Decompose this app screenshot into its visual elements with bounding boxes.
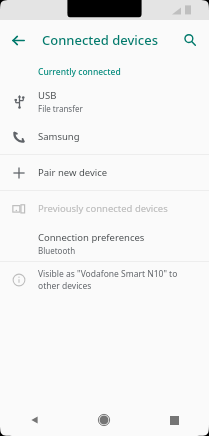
button[interactable]: Connection preferences xyxy=(0,226,209,261)
button[interactable]: Back xyxy=(0,404,69,436)
staticText: Samsung xyxy=(38,130,80,143)
staticText: Visible as "Vodafone Smart N10" to other… xyxy=(38,268,197,292)
button[interactable]: Recents xyxy=(139,404,209,436)
staticText: Bluetooth xyxy=(38,245,76,256)
button[interactable]: Pair new device xyxy=(0,155,209,190)
button[interactable]: Search xyxy=(177,27,203,53)
button[interactable]: USB xyxy=(0,84,209,119)
staticText: Previously connected devices xyxy=(38,202,168,215)
button[interactable]: Home xyxy=(69,404,139,436)
button[interactable]: Previously connected devices xyxy=(0,191,209,226)
staticText: USB xyxy=(38,89,57,102)
staticText: Currently connected xyxy=(38,66,121,78)
button[interactable]: Samsung xyxy=(0,119,209,154)
button[interactable]: Back xyxy=(4,26,32,54)
staticText: Pair new device xyxy=(38,166,108,179)
staticText: Connected devices xyxy=(42,31,159,49)
staticText: File transfer xyxy=(38,103,83,114)
staticText: Connection preferences xyxy=(38,231,145,244)
